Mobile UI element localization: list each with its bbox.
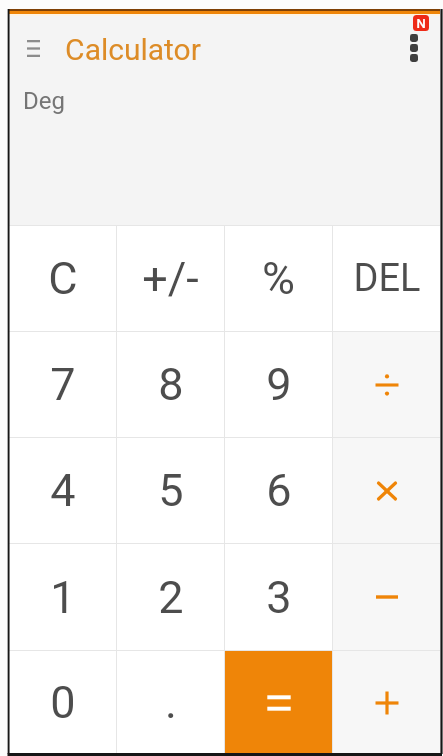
button[interactable]: DEL <box>333 226 440 331</box>
button[interactable]: C <box>9 226 116 331</box>
staticText: 7 <box>50 358 76 411</box>
button[interactable]: Menu <box>14 29 52 67</box>
staticText: % <box>262 252 295 305</box>
staticText: 3 <box>266 571 292 624</box>
staticText: C <box>48 252 78 305</box>
staticText: . <box>165 676 177 729</box>
button[interactable]: 6 <box>225 438 332 543</box>
button[interactable]: Multiply <box>333 438 440 543</box>
staticText: DEL <box>353 256 421 301</box>
button[interactable]: 1 <box>9 544 116 650</box>
button[interactable]: Subtract <box>333 544 440 650</box>
staticText: Deg <box>23 87 65 115</box>
staticText: 4 <box>50 464 76 517</box>
staticText: 0 <box>50 676 76 729</box>
button[interactable]: 0 <box>9 651 116 754</box>
button[interactable]: 3 <box>225 544 332 650</box>
staticText: N <box>416 16 426 31</box>
staticText: +/- <box>142 252 199 305</box>
staticText: 2 <box>158 571 184 624</box>
button[interactable]: 8 <box>117 332 224 437</box>
button[interactable]: More options <box>394 28 434 68</box>
staticText: 6 <box>266 464 292 517</box>
button[interactable]: 9 <box>225 332 332 437</box>
button[interactable]: 5 <box>117 438 224 543</box>
staticText: 8 <box>158 358 184 411</box>
button[interactable]: % <box>225 226 332 331</box>
staticText: 9 <box>266 358 292 411</box>
button[interactable]: 4 <box>9 438 116 543</box>
button[interactable]: . <box>117 651 224 754</box>
button[interactable]: 2 <box>117 544 224 650</box>
button[interactable]: Equals <box>225 651 332 754</box>
button[interactable]: Add <box>333 651 440 754</box>
staticText: 5 <box>158 464 184 517</box>
staticText: 1 <box>50 571 76 624</box>
button[interactable]: Divide <box>333 332 440 437</box>
staticText: Calculator <box>65 32 201 67</box>
button[interactable]: +/- <box>117 226 224 331</box>
button[interactable]: Calculator <box>65 30 201 68</box>
button[interactable]: 7 <box>9 332 116 437</box>
